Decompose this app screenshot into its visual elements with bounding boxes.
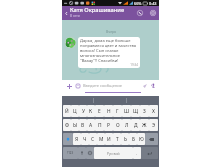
staticText: Катя Окрашивание [70, 6, 125, 14]
button[interactable]: Ы [71, 119, 79, 131]
staticText: И [107, 136, 111, 143]
button[interactable]: Н [104, 105, 113, 117]
button[interactable] [86, 147, 94, 159]
button[interactable]: Я [73, 133, 81, 145]
button[interactable]: М [97, 133, 105, 145]
staticText: З [143, 108, 146, 115]
staticText: . [136, 151, 138, 156]
button[interactable]: И [105, 133, 113, 145]
staticText: 19:34 [80, 63, 138, 67]
button[interactable]: А [87, 119, 95, 131]
staticText: Введите сообщение [83, 83, 123, 88]
button[interactable]: С [89, 133, 97, 145]
button[interactable]: Русский [94, 147, 133, 159]
button[interactable]: Ш [122, 105, 131, 117]
button[interactable]: О [113, 119, 122, 131]
staticText: Й [65, 108, 69, 115]
button[interactable]: К [87, 105, 95, 117]
button[interactable] [78, 147, 86, 159]
staticText: Т [116, 136, 119, 143]
staticText: С [91, 136, 95, 143]
button[interactable]: В [79, 119, 87, 131]
staticText: Щ [133, 108, 138, 115]
staticText: Я [75, 136, 79, 143]
button[interactable]: Voice message [149, 81, 158, 90]
staticText: Ш [124, 108, 130, 115]
button[interactable]: Options [146, 6, 159, 20]
button[interactable]: Т [113, 133, 121, 145]
staticText: П [98, 122, 102, 129]
staticText: Г [116, 108, 119, 115]
staticText: Л [125, 122, 129, 129]
staticText: Х [152, 108, 155, 115]
button[interactable]: Г [113, 105, 122, 117]
button[interactable]: ?123 [63, 147, 78, 159]
staticText: М [99, 136, 104, 143]
staticText: Дарья, дома еще больше понравился цвет и… [80, 38, 138, 63]
staticText: О [116, 122, 120, 129]
staticText: Д [134, 122, 138, 129]
button[interactable] [63, 133, 73, 145]
staticText: 0:43 [149, 1, 157, 6]
button[interactable]: П [95, 119, 104, 131]
button[interactable]: Р [104, 119, 113, 131]
button[interactable]: Ю [137, 133, 145, 145]
staticText: Е [98, 108, 101, 115]
staticText: Ж [142, 122, 147, 129]
staticText: Ю [139, 136, 144, 143]
staticText: Ы [73, 122, 78, 129]
staticText: Ф [65, 122, 70, 129]
button[interactable]: Ф [63, 119, 71, 131]
staticText: А [89, 122, 93, 129]
button[interactable]: Д [131, 119, 140, 131]
button[interactable]: Е [95, 105, 104, 117]
button[interactable]: Ч [81, 133, 89, 145]
button[interactable]: Send [141, 82, 149, 90]
button[interactable]: Й [63, 105, 71, 117]
staticText: Ь [124, 136, 127, 143]
button[interactable]: Х [149, 105, 158, 117]
staticText: Русский [107, 151, 120, 155]
staticText: В сети [70, 14, 80, 18]
button[interactable]: Ц [71, 105, 79, 117]
button[interactable]: Ь [121, 133, 129, 145]
staticText: Б [132, 136, 135, 143]
staticText: В [81, 122, 85, 129]
staticText: К [89, 108, 93, 115]
button[interactable]: Call [133, 6, 146, 20]
button[interactable]: Ж [140, 119, 149, 131]
button[interactable]: Add [65, 82, 73, 90]
button[interactable]: Л [122, 119, 131, 131]
button[interactable]: Щ [131, 105, 140, 117]
staticText: Вчера [106, 29, 116, 34]
staticText: ?123 [67, 151, 74, 155]
staticText: У [82, 108, 85, 115]
button[interactable] [141, 147, 158, 159]
button[interactable]: З [140, 105, 149, 117]
button[interactable]: Б [129, 133, 137, 145]
button[interactable]: . [133, 147, 141, 159]
staticText: Ц [73, 108, 77, 115]
button[interactable]: Э [149, 119, 158, 131]
staticText: Р [107, 122, 110, 129]
staticText: Ч [83, 136, 87, 143]
button[interactable]: У [79, 105, 87, 117]
staticText: 66% [134, 1, 142, 6]
button[interactable]: Back [62, 6, 70, 20]
button[interactable]: Stickers [74, 82, 82, 90]
staticText: Н [107, 108, 111, 115]
staticText: Э [152, 122, 156, 129]
button[interactable] [145, 133, 158, 145]
